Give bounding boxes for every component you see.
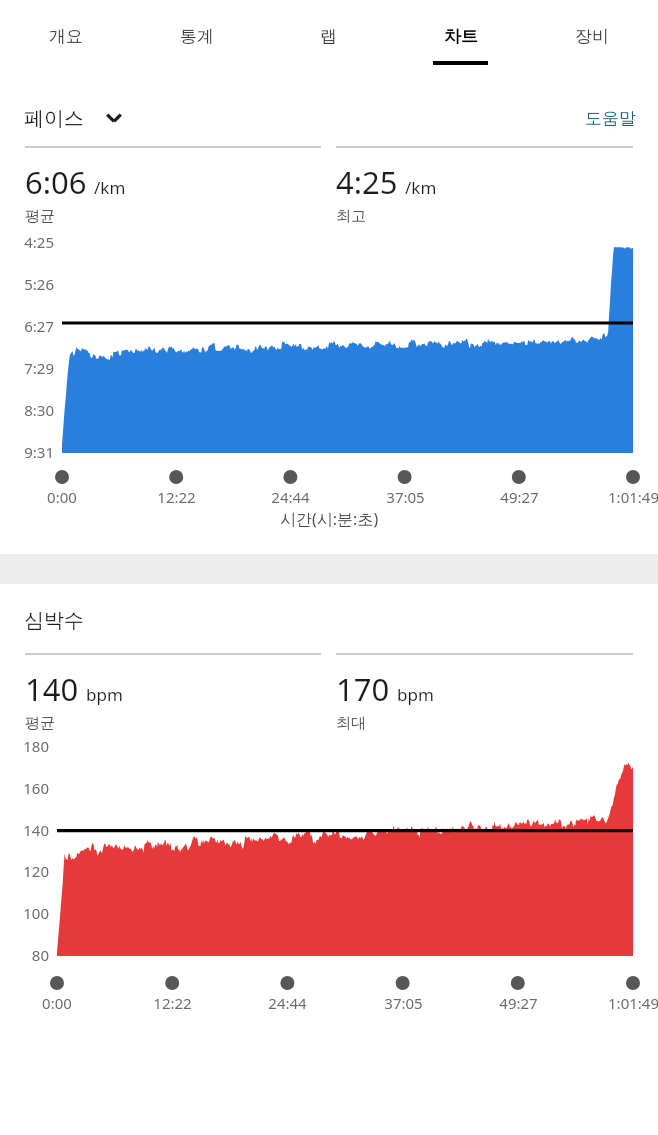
button[interactable]: 차트 (394, 0, 526, 90)
button[interactable]: 4:25 (336, 161, 633, 226)
staticText: 140 (25, 668, 79, 710)
button[interactable]: 장비 (526, 0, 658, 90)
staticText: 도움말 (585, 108, 636, 129)
staticText: bpm (397, 683, 434, 706)
staticText: 최고 (336, 207, 366, 226)
staticText: 통계 (180, 26, 214, 47)
staticText: 1:01:49 (608, 993, 658, 1013)
other: Select metric (100, 104, 128, 132)
staticText: 1:01:49 (608, 487, 658, 507)
button[interactable]: 페이스 (24, 104, 128, 132)
staticText: /km (405, 176, 437, 199)
staticText: 49:27 (499, 993, 538, 1013)
button[interactable]: 개요 (0, 0, 131, 90)
staticText: 8:30 (24, 400, 54, 420)
staticText: 심박수 (24, 608, 84, 633)
button[interactable]: 통계 (131, 0, 262, 90)
staticText: /km (94, 176, 126, 199)
button[interactable]: 140 (25, 668, 321, 733)
staticText: 차트 (444, 26, 478, 47)
staticText: 장비 (575, 26, 609, 47)
staticText: 80 (31, 945, 49, 965)
staticText: 0:00 (47, 487, 77, 507)
staticText: 7:29 (24, 358, 54, 378)
staticText: 37:05 (384, 993, 423, 1013)
staticText: 0:00 (42, 993, 72, 1013)
staticText: 6:27 (24, 316, 54, 336)
staticText: 49:27 (500, 487, 539, 507)
staticText: 37:05 (386, 487, 425, 507)
staticText: 최대 (336, 714, 366, 733)
staticText: 5:26 (24, 274, 54, 294)
staticText: 6:06 (25, 161, 87, 203)
staticText: 100 (23, 903, 49, 923)
staticText: 12:22 (157, 487, 196, 507)
staticText: 랩 (320, 26, 337, 47)
staticText: 9:31 (24, 442, 54, 462)
staticText: 24:44 (268, 993, 307, 1013)
button[interactable]: 랩 (262, 0, 394, 90)
staticText: 4:25 (336, 161, 398, 203)
button[interactable]: 6:06 (25, 161, 321, 226)
staticText: 120 (23, 861, 49, 881)
button[interactable]: 170 (336, 668, 633, 733)
staticText: bpm (86, 683, 123, 706)
staticText: 개요 (49, 26, 83, 47)
staticText: 140 (23, 820, 49, 840)
button[interactable]: 도움말 (585, 108, 636, 129)
staticText: 24:44 (271, 487, 310, 507)
staticText: 시간(시:분:초) (280, 508, 379, 530)
staticText: 170 (336, 668, 390, 710)
staticText: 180 (23, 736, 49, 756)
staticText: 평균 (25, 714, 55, 733)
staticText: 12:22 (153, 993, 192, 1013)
staticText: 평균 (25, 207, 55, 226)
staticText: 160 (23, 778, 49, 798)
staticText: 4:25 (24, 232, 54, 252)
staticText: 페이스 (24, 106, 84, 131)
